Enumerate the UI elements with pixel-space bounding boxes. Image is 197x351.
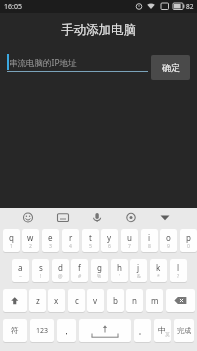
staticText: 确定 — [162, 62, 180, 73]
staticText: 7 — [128, 243, 131, 250]
staticText: 123 — [36, 326, 49, 336]
staticText: y — [107, 232, 112, 243]
staticText: p — [186, 232, 191, 243]
button[interactable]: v — [87, 289, 104, 312]
staticText: 。 — [138, 326, 147, 337]
staticText: e — [48, 232, 53, 243]
staticText: ' — [119, 273, 121, 280]
staticText: t — [89, 232, 92, 243]
staticText: 3 — [49, 243, 52, 250]
staticText: 完成 — [177, 326, 191, 335]
button[interactable]: g — [91, 259, 108, 282]
button[interactable]: ， — [57, 319, 76, 342]
staticText: k — [156, 262, 161, 273]
button[interactable]: k — [150, 259, 167, 282]
button[interactable]: 完成 — [174, 319, 194, 342]
staticText: ， — [62, 326, 71, 337]
button[interactable]: q — [3, 229, 20, 252]
button[interactable]: o — [160, 229, 177, 252]
staticText: @ — [58, 273, 63, 280]
button[interactable] — [3, 289, 27, 312]
button[interactable]: p — [180, 229, 197, 252]
button[interactable]: 123 — [30, 319, 54, 342]
staticText: 0 — [187, 243, 190, 250]
button[interactable]: 中 — [154, 319, 171, 342]
staticText: ~ — [19, 273, 22, 280]
staticText: 9 — [167, 243, 170, 250]
staticText: j — [137, 262, 140, 273]
staticText: v — [93, 295, 98, 306]
staticText: f — [78, 262, 81, 273]
button[interactable]: t — [82, 229, 99, 252]
staticText: 英 — [165, 332, 170, 338]
staticText: 手动添加电脑 — [61, 22, 136, 38]
button[interactable]: 确定 — [151, 55, 190, 80]
staticText: 5 — [89, 243, 92, 250]
staticText: l — [177, 262, 180, 273]
button[interactable]: h — [111, 259, 128, 282]
button[interactable]: 串流电脑的IP地址 — [7, 52, 148, 74]
staticText: x — [54, 295, 59, 306]
staticText: ? — [177, 273, 180, 280]
button[interactable]: j — [130, 259, 147, 282]
staticText: 符 — [11, 326, 19, 335]
staticText: o — [166, 232, 171, 243]
staticText: ! — [40, 273, 42, 280]
staticText: 8 — [148, 243, 151, 250]
staticText: g — [97, 262, 102, 273]
button[interactable] — [166, 289, 195, 312]
staticText: 2 — [29, 243, 32, 250]
staticText: m — [151, 295, 159, 306]
staticText: * — [157, 273, 160, 280]
staticText: 串流电脑的IP地址 — [9, 57, 77, 69]
button[interactable]: d — [52, 259, 69, 282]
staticText: & — [137, 273, 141, 280]
button[interactable]: x — [48, 289, 65, 312]
button[interactable]: c — [68, 289, 85, 312]
staticText: 中 — [158, 325, 166, 335]
staticText: c — [75, 295, 79, 306]
button[interactable]: z — [29, 289, 46, 312]
button[interactable]: 。 — [134, 319, 151, 342]
staticText: s — [39, 262, 43, 273]
button[interactable]: 符 — [3, 319, 27, 342]
staticText: 1 — [10, 243, 13, 250]
button[interactable]: y — [101, 229, 118, 252]
staticText: 6 — [108, 243, 111, 250]
staticText: % — [97, 273, 102, 280]
button[interactable]: r — [62, 229, 79, 252]
staticText: 4 — [69, 243, 72, 250]
button[interactable]: a — [12, 259, 29, 282]
staticText: 16:05 — [4, 2, 22, 12]
staticText: b — [113, 295, 118, 306]
staticText: w — [27, 232, 34, 243]
staticText: u — [127, 232, 132, 243]
button[interactable]: i — [141, 229, 158, 252]
button[interactable]: l — [170, 259, 187, 282]
button[interactable]: f — [71, 259, 88, 282]
staticText: h — [117, 262, 122, 273]
staticText: d — [58, 262, 63, 273]
button[interactable]: u — [121, 229, 138, 252]
staticText: a — [18, 262, 23, 273]
button[interactable]: s — [32, 259, 49, 282]
staticText: i — [148, 232, 151, 243]
button[interactable]: e — [42, 229, 59, 252]
staticText: q — [9, 232, 14, 243]
button[interactable]: w — [22, 229, 39, 252]
staticText: 82 — [186, 2, 194, 11]
staticText: z — [36, 295, 40, 306]
button[interactable] — [79, 319, 131, 342]
staticText: r — [69, 232, 73, 243]
button[interactable]: n — [126, 289, 143, 312]
button[interactable]: m — [146, 289, 163, 312]
staticText: n — [132, 295, 137, 306]
button[interactable]: b — [107, 289, 124, 312]
staticText: # — [78, 273, 82, 280]
